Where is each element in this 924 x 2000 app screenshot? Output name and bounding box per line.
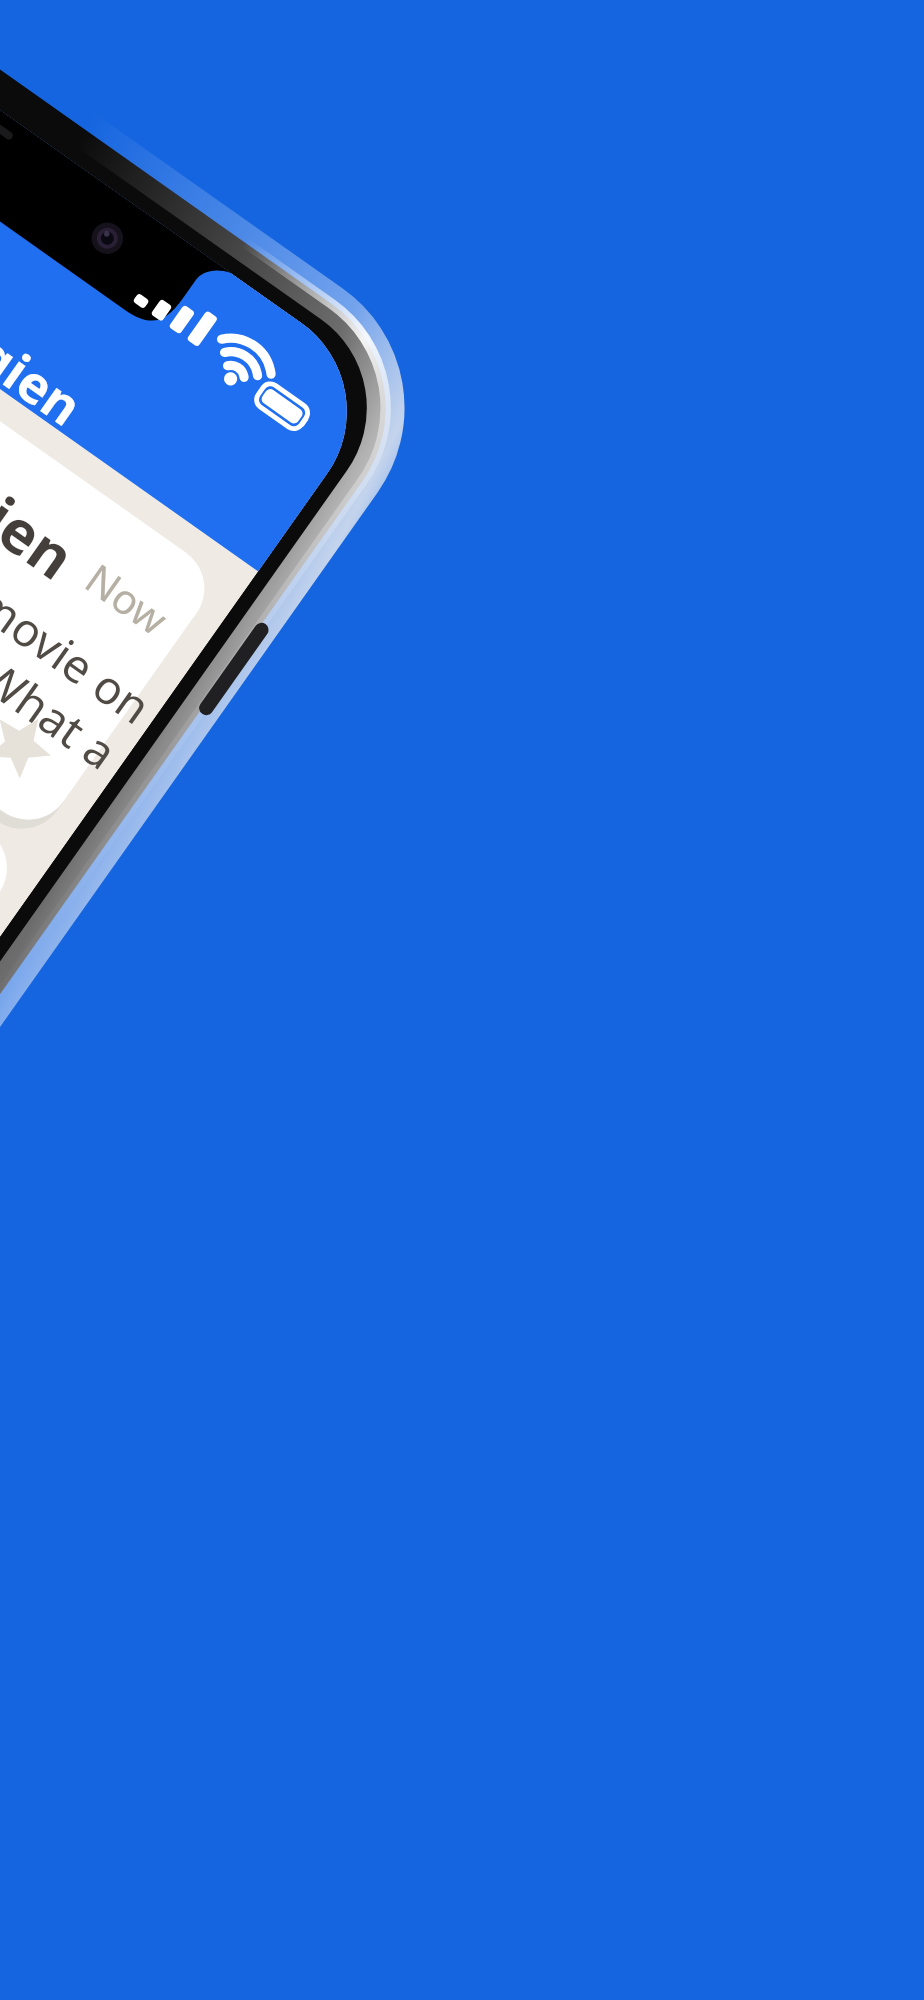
button[interactable]: Anna Skalagien conversation screenshot — [0, 0, 924, 2000]
